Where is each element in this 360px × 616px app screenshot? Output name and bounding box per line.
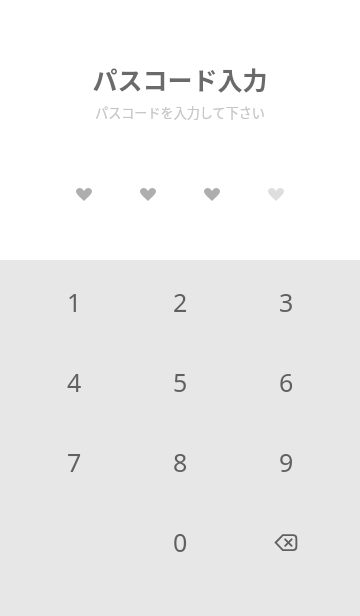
staticText: 4 (67, 365, 82, 399)
button[interactable]: 9 (233, 442, 339, 482)
button[interactable]: Delete (233, 522, 339, 562)
staticText: 2 (173, 285, 188, 319)
staticText: 6 (279, 365, 294, 399)
staticText: 1 (67, 285, 82, 319)
staticText: パスコード入力 (92, 61, 268, 97)
staticText: 5 (173, 365, 188, 399)
button[interactable]: 6 (233, 362, 339, 402)
staticText: 7 (67, 445, 82, 479)
button[interactable]: 7 (21, 442, 127, 482)
button[interactable]: 8 (127, 442, 233, 482)
button[interactable]: 2 (127, 282, 233, 322)
staticText: 9 (279, 445, 294, 479)
button[interactable]: 0 (127, 522, 233, 562)
staticText: 0 (173, 525, 188, 559)
staticText: パスコードを入力して下さい (95, 103, 265, 122)
staticText: 3 (279, 285, 294, 319)
staticText: 8 (173, 445, 188, 479)
button[interactable]: 1 (21, 282, 127, 322)
button[interactable]: 3 (233, 282, 339, 322)
button[interactable]: 4 (21, 362, 127, 402)
button[interactable]: 5 (127, 362, 233, 402)
